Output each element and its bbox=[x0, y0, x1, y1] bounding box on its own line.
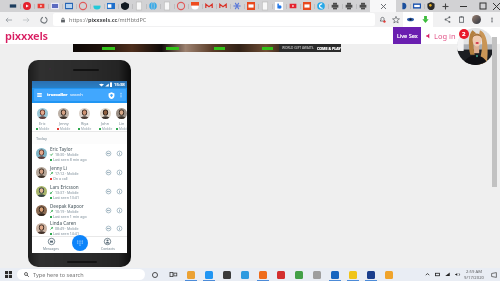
button[interactable]: App bbox=[380, 268, 398, 281]
button[interactable]: New tab bbox=[438, 0, 452, 12]
button[interactable]: Tab bbox=[342, 0, 356, 12]
button[interactable]: Extension bbox=[403, 12, 418, 27]
button[interactable]: Tab bbox=[118, 0, 132, 12]
button[interactable]: Profile bbox=[468, 12, 484, 27]
button[interactable]: More bbox=[117, 91, 125, 99]
button[interactable]: Contacts bbox=[88, 236, 127, 253]
button[interactable]: Tab bbox=[132, 0, 146, 12]
button[interactable]: Copy bbox=[454, 12, 468, 27]
button[interactable]: Close tab bbox=[370, 0, 396, 12]
button[interactable]: Cortana bbox=[146, 268, 164, 281]
button[interactable]: Tab bbox=[272, 0, 286, 12]
button[interactable]: Back bbox=[0, 12, 17, 27]
button[interactable]: Video call bbox=[103, 223, 114, 234]
button[interactable]: Tab bbox=[48, 0, 62, 12]
button[interactable]: Tab bbox=[286, 0, 300, 12]
button[interactable]: App bbox=[236, 268, 254, 281]
button[interactable]: App bbox=[272, 268, 290, 281]
button[interactable]: Live model bbox=[457, 28, 494, 65]
button[interactable]: Tab bbox=[300, 0, 314, 12]
button[interactable]: 2 notifications bbox=[459, 29, 469, 39]
button[interactable]: Tab bbox=[90, 0, 104, 12]
button[interactable]: Riya bbox=[74, 103, 95, 131]
button[interactable]: Tab bbox=[76, 0, 90, 12]
button[interactable]: John bbox=[95, 103, 116, 131]
button[interactable]: Jenny Li bbox=[32, 163, 127, 182]
button[interactable]: Notifications bbox=[375, 12, 389, 27]
button[interactable]: Details bbox=[114, 167, 125, 178]
button[interactable]: Tab bbox=[216, 0, 230, 12]
button[interactable]: Tab bbox=[104, 0, 118, 12]
button[interactable]: App bbox=[254, 268, 272, 281]
button[interactable]: App bbox=[326, 268, 344, 281]
button[interactable]: Messages bbox=[32, 236, 70, 253]
button[interactable]: Start bbox=[0, 268, 17, 281]
button[interactable]: Tab bbox=[396, 0, 410, 12]
button[interactable]: Bookmark bbox=[389, 12, 403, 27]
button[interactable]: Minimize bbox=[452, 0, 474, 12]
button[interactable]: Tab bbox=[258, 0, 272, 12]
button[interactable]: Video call bbox=[103, 205, 114, 216]
button[interactable]: App bbox=[344, 268, 362, 281]
button[interactable]: truecaller bbox=[34, 89, 126, 101]
button[interactable]: Jenny bbox=[53, 103, 74, 131]
button[interactable]: Reload bbox=[35, 12, 53, 27]
button[interactable]: Linda Caren bbox=[32, 220, 127, 236]
button[interactable]: App bbox=[200, 268, 218, 281]
button[interactable]: Tray icon bbox=[432, 268, 442, 281]
button[interactable]: Tab bbox=[328, 0, 342, 12]
button[interactable]: Lin bbox=[116, 103, 127, 131]
button[interactable]: Live Sex bbox=[393, 27, 421, 44]
button[interactable]: Details bbox=[114, 186, 125, 197]
button[interactable]: Tab bbox=[146, 0, 160, 12]
button[interactable]: Tab bbox=[34, 0, 48, 12]
button[interactable]: Network bbox=[442, 268, 452, 281]
button[interactable]: Tab bbox=[356, 0, 370, 12]
button[interactable]: https://pixxxels.cc/mtHbtdPC bbox=[53, 13, 375, 26]
button[interactable]: Close window bbox=[492, 0, 500, 12]
button[interactable]: pixxxels bbox=[5, 28, 48, 43]
button[interactable]: Eric bbox=[32, 103, 53, 131]
button[interactable]: Tab bbox=[244, 0, 258, 12]
button[interactable]: Video call bbox=[103, 148, 114, 159]
button[interactable]: Forward bbox=[17, 12, 35, 27]
button[interactable]: Log in bbox=[426, 31, 456, 41]
button[interactable]: Details bbox=[114, 148, 125, 159]
button[interactable]: Tab bbox=[188, 0, 202, 12]
button[interactable]: Tab bbox=[174, 0, 188, 12]
button[interactable]: WORLD GIFT AWAITS. bbox=[73, 44, 341, 52]
button[interactable]: Share bbox=[440, 12, 454, 27]
button[interactable]: Date and time bbox=[464, 269, 484, 280]
button[interactable]: Show hidden icons bbox=[422, 268, 432, 281]
button[interactable]: Tab bbox=[410, 0, 424, 12]
button[interactable]: App bbox=[218, 268, 236, 281]
button[interactable]: Tab bbox=[314, 0, 328, 12]
button[interactable]: More options bbox=[484, 12, 500, 27]
button[interactable]: App bbox=[290, 268, 308, 281]
button[interactable]: Dialpad bbox=[72, 235, 88, 251]
button[interactable]: Details bbox=[114, 223, 125, 234]
button[interactable]: Video call bbox=[103, 167, 114, 178]
button[interactable]: Task view bbox=[164, 268, 182, 281]
button[interactable]: Tab bbox=[6, 0, 20, 12]
button[interactable]: Lars Ericsson bbox=[32, 182, 127, 201]
button[interactable]: Tab bbox=[62, 0, 76, 12]
button[interactable]: Eric Taylor bbox=[32, 144, 127, 163]
button[interactable]: Details bbox=[114, 205, 125, 216]
button[interactable]: Type here to search bbox=[17, 269, 145, 280]
button[interactable]: Action center bbox=[488, 268, 500, 281]
button[interactable]: Deepak Kapoor bbox=[32, 201, 127, 220]
button[interactable]: App bbox=[182, 268, 200, 281]
button[interactable]: Maximize bbox=[474, 0, 492, 12]
button[interactable]: Video call bbox=[103, 186, 114, 197]
button[interactable]: Tab bbox=[20, 0, 34, 12]
button[interactable]: Tab bbox=[202, 0, 216, 12]
button[interactable]: App bbox=[362, 268, 380, 281]
button[interactable]: Downloads bbox=[418, 12, 433, 27]
button[interactable]: Tab bbox=[160, 0, 174, 12]
button[interactable]: Protection bbox=[107, 91, 116, 100]
button[interactable]: Tab bbox=[424, 0, 438, 12]
button[interactable]: Volume bbox=[452, 268, 462, 281]
button[interactable]: Tab bbox=[230, 0, 244, 12]
button[interactable]: App bbox=[308, 268, 326, 281]
